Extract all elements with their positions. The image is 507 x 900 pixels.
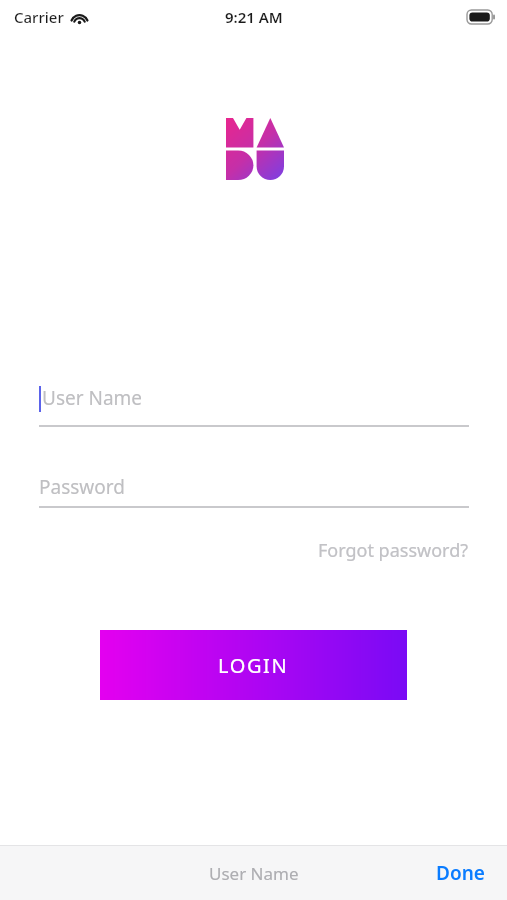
staticText: Carrier [14,7,64,27]
staticText: LOGIN [218,652,289,679]
staticText: User Name [42,385,143,411]
staticText: Forgot password? [318,538,469,563]
other: Wi-Fi [71,11,88,24]
button[interactable]: Password [39,466,469,508]
staticText: User Name [209,862,299,885]
staticText: 9:21 AM [225,7,283,27]
button[interactable]: LOGIN [100,630,407,700]
button[interactable]: User Name [39,385,469,427]
other: Battery full [467,10,495,24]
button[interactable]: Forgot password? [270,532,469,568]
button[interactable]: Done [414,846,507,900]
other: MADU logo [226,118,284,180]
staticText: Done [436,860,485,886]
staticText: Password [39,474,125,500]
